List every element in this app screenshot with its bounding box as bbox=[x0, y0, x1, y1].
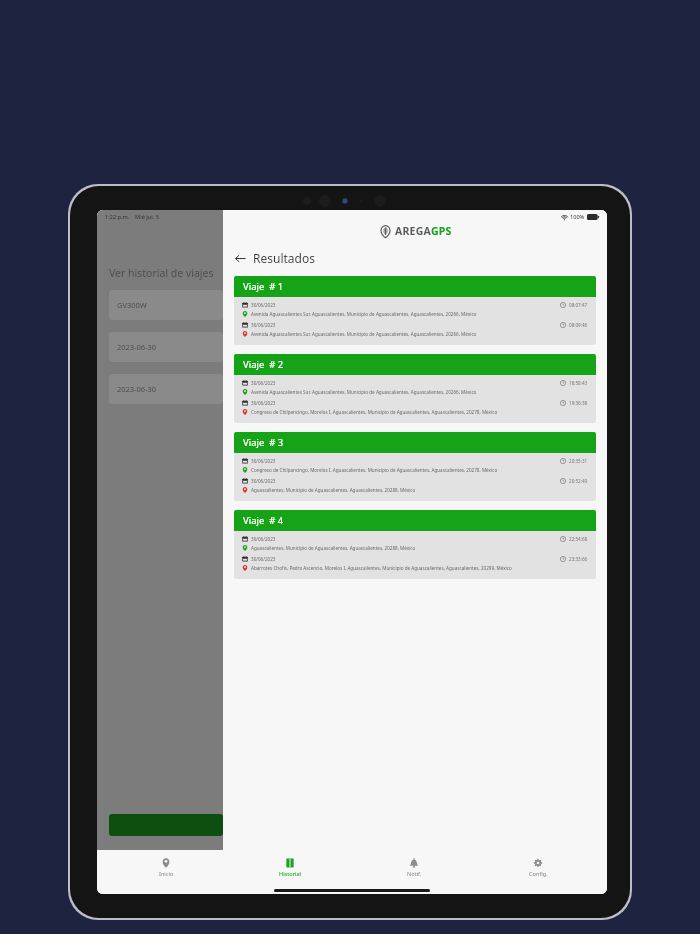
staticText: 30/06/2023 bbox=[251, 458, 276, 464]
staticText: 18:58:43 bbox=[569, 380, 588, 386]
staticText: Congreso de Chilpancingo, Morelos I, Agu… bbox=[251, 409, 498, 415]
staticText: 30/06/2023 bbox=[251, 478, 276, 484]
button[interactable]: Historial bbox=[235, 855, 345, 881]
staticText: Viaje # 1 bbox=[243, 280, 284, 293]
button[interactable]: Viaje # 2 bbox=[234, 354, 596, 423]
staticText: Viaje # 4 bbox=[243, 514, 284, 527]
staticText: 30/06/2023 bbox=[251, 302, 276, 308]
staticText: Viaje # 3 bbox=[243, 436, 284, 449]
staticText: 30/06/2023 bbox=[251, 556, 276, 562]
staticText: 20:52:49 bbox=[569, 478, 588, 484]
staticText: Viaje # 2 bbox=[243, 358, 284, 371]
button[interactable]: Viaje # 1 bbox=[234, 276, 596, 345]
staticText: Aguascalientes, Municipio de Aguascalien… bbox=[251, 545, 416, 551]
staticText: 08:09:46 bbox=[569, 322, 588, 328]
button[interactable]: Viaje # 4 bbox=[234, 510, 596, 579]
other: Back bbox=[233, 251, 247, 265]
staticText: Avenida Aguascalientes Sur, Aguascalient… bbox=[251, 331, 477, 337]
staticText: 19:36:38 bbox=[569, 400, 588, 406]
staticText: 08:07:47 bbox=[569, 302, 588, 308]
staticText: Ver historial de viajes bbox=[109, 266, 214, 280]
staticText: Avenida Aguascalientes Sur, Aguascalient… bbox=[251, 311, 477, 317]
button[interactable]: GV300W bbox=[109, 290, 223, 320]
button[interactable]: Config. bbox=[483, 855, 593, 881]
staticText: Notif. bbox=[407, 870, 422, 878]
button[interactable]: Back bbox=[231, 248, 317, 268]
button[interactable] bbox=[109, 814, 223, 836]
staticText: Aguascalientes, Municipio de Aguascalien… bbox=[251, 487, 416, 493]
button[interactable]: Inicio bbox=[111, 855, 221, 881]
button[interactable]: 2023-06-30 bbox=[109, 374, 223, 404]
staticText: GPS bbox=[431, 224, 452, 238]
staticText: Avenida Aguascalientes Sur, Aguascalient… bbox=[251, 389, 477, 395]
staticText: Config. bbox=[529, 870, 548, 878]
staticText: 20:35:31 bbox=[569, 458, 588, 464]
button[interactable]: Viaje # 3 bbox=[234, 432, 596, 501]
staticText: Mié jul. 5 bbox=[135, 213, 160, 221]
staticText: 2023-06-30 bbox=[117, 384, 157, 394]
staticText: AREGA bbox=[395, 224, 431, 238]
button[interactable]: 2023-06-30 bbox=[109, 332, 223, 362]
button[interactable]: Notif. bbox=[359, 855, 469, 881]
staticText: Abarrotes Chofis, Pedro Ascencio, Morelo… bbox=[251, 565, 512, 571]
staticText: Congreso de Chilpancingo, Morelos I, Agu… bbox=[251, 467, 498, 473]
staticText: 2023-06-30 bbox=[117, 342, 157, 352]
staticText: Inicio bbox=[159, 870, 174, 878]
staticText: 1:22 p.m. bbox=[105, 213, 130, 221]
staticText: Resultados bbox=[253, 250, 315, 266]
staticText: 30/06/2023 bbox=[251, 322, 276, 328]
staticText: 22:54:68 bbox=[569, 536, 588, 542]
staticText: 100% bbox=[570, 213, 585, 221]
staticText: 30/06/2023 bbox=[251, 400, 276, 406]
staticText: 30/06/2023 bbox=[251, 380, 276, 386]
staticText: Historial bbox=[279, 870, 302, 878]
staticText: 23:33:66 bbox=[569, 556, 588, 562]
staticText: GV300W bbox=[117, 300, 147, 310]
staticText: 30/06/2023 bbox=[251, 536, 276, 542]
